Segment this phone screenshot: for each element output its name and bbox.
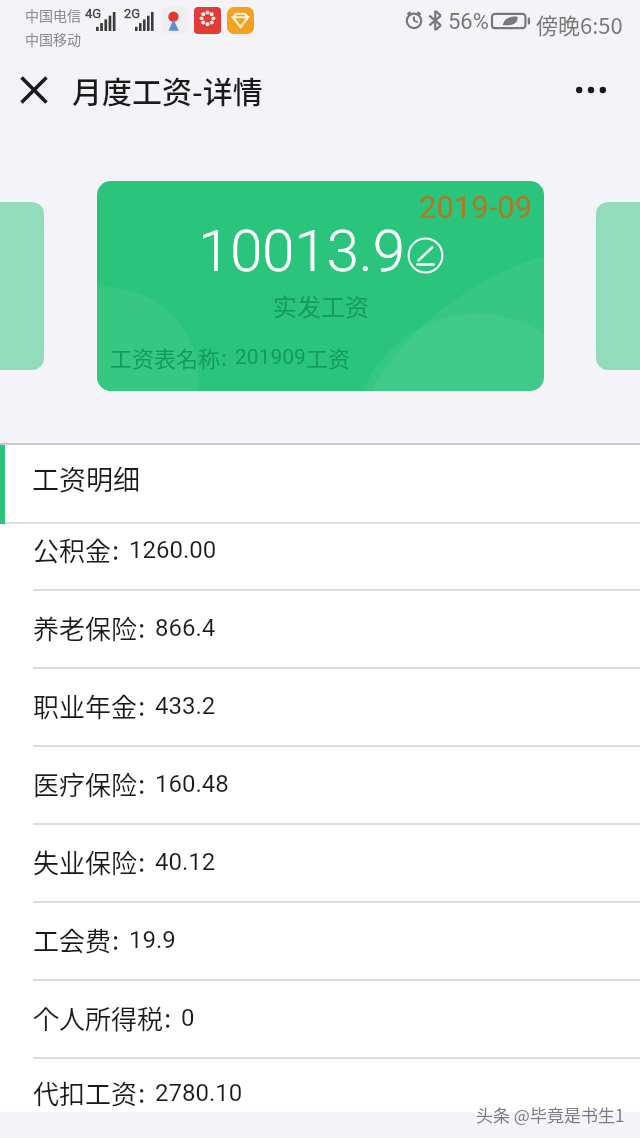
- staticText: 职业年金: [33, 687, 138, 725]
- staticText: 40.12: [155, 848, 216, 876]
- staticText: 工资: [306, 341, 351, 373]
- staticText: :: [138, 608, 146, 646]
- staticText: 2G: [124, 6, 141, 21]
- staticText: 头条 @毕竟是书生1: [476, 1102, 625, 1127]
- staticText: 4G: [85, 6, 102, 21]
- staticText: 工会费: [33, 921, 112, 959]
- button[interactable]: 职业年金: [0, 669, 640, 747]
- staticText: :: [138, 842, 146, 880]
- staticText: 养老保险: [33, 609, 138, 647]
- staticText: 0: [181, 1004, 195, 1032]
- staticText: 实发工资: [273, 288, 369, 323]
- button[interactable]: 公积金: [0, 524, 640, 591]
- staticText: 2019-09: [419, 189, 533, 225]
- staticText: 失业保险: [33, 843, 138, 881]
- button[interactable]: More options: [563, 62, 619, 118]
- staticText: 201909: [235, 345, 306, 370]
- button[interactable]: 代扣工资: [0, 1059, 640, 1112]
- staticText: 10013.9: [198, 217, 405, 285]
- staticText: 工资明细: [32, 459, 140, 498]
- staticText: 月度工资-详情: [72, 68, 263, 111]
- staticText: 433.2: [155, 692, 216, 720]
- button[interactable]: 2019-09: [97, 181, 544, 391]
- button[interactable]: 个人所得税: [0, 981, 640, 1059]
- staticText: 56%: [448, 9, 489, 35]
- staticText: 医疗保险: [33, 765, 138, 803]
- staticText: 2780.10: [155, 1079, 243, 1107]
- button[interactable]: [596, 202, 640, 370]
- staticText: 中国电信: [25, 5, 81, 25]
- staticText: 傍晚6:50: [536, 8, 623, 40]
- staticText: :: [112, 920, 120, 958]
- button[interactable]: Edit: [407, 237, 444, 274]
- staticText: 工资表名称: [110, 341, 221, 373]
- staticText: 19.9: [129, 926, 176, 954]
- staticText: 1260.00: [129, 536, 217, 564]
- staticText: 公积金: [33, 531, 112, 569]
- button[interactable]: [0, 202, 44, 370]
- staticText: :: [221, 340, 228, 372]
- staticText: 866.4: [155, 614, 216, 642]
- staticText: :: [112, 530, 120, 568]
- staticText: 中国移动: [25, 29, 81, 49]
- staticText: :: [138, 686, 146, 724]
- staticText: 160.48: [155, 770, 229, 798]
- button[interactable]: 工资明细: [0, 445, 640, 524]
- button[interactable]: 失业保险: [0, 825, 640, 903]
- button[interactable]: Close: [6, 62, 62, 118]
- button[interactable]: 医疗保险: [0, 747, 640, 825]
- staticText: :: [164, 998, 172, 1036]
- staticText: :: [138, 764, 146, 802]
- staticText: 个人所得税: [33, 999, 164, 1037]
- staticText: 代扣工资: [33, 1074, 138, 1112]
- button[interactable]: 工会费: [0, 903, 640, 981]
- button[interactable]: 养老保险: [0, 591, 640, 669]
- staticText: :: [138, 1073, 146, 1111]
